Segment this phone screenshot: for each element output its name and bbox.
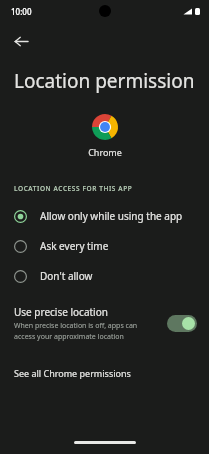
button[interactable]: Back — [6, 26, 36, 56]
staticText: Allow only while using the app — [40, 209, 183, 223]
staticText: When precise location is off, apps can a… — [14, 321, 157, 341]
staticText: 10:00 — [11, 6, 32, 17]
button[interactable]: Use precise location — [0, 299, 209, 347]
staticText: Use precise location — [14, 305, 108, 319]
button[interactable]: Allow only while using the app — [0, 201, 209, 231]
staticText: Chrome — [88, 146, 122, 158]
staticText: LOCATION ACCESS FOR THIS APP — [14, 184, 133, 193]
staticText: Ask every time — [40, 239, 109, 253]
button[interactable]: See all Chrome permissions — [0, 363, 145, 383]
button[interactable]: Don't allow — [0, 261, 209, 291]
staticText: Don't allow — [40, 269, 93, 283]
staticText: Location permission — [14, 68, 195, 94]
button[interactable]: Use precise location toggle — [167, 315, 197, 332]
button[interactable]: Ask every time — [0, 231, 209, 261]
